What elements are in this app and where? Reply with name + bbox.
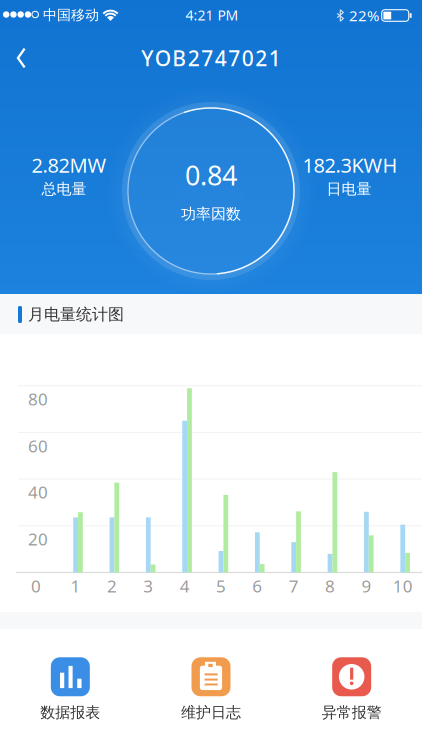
staticText: 4 — [180, 575, 190, 597]
staticText: 功率因数 — [181, 205, 241, 223]
staticText: 4:21 PM — [185, 6, 238, 24]
staticText: 1 — [71, 575, 81, 597]
staticText: 10 — [393, 575, 413, 597]
staticText: 6 — [252, 575, 262, 597]
staticText: 7 — [289, 575, 299, 597]
staticText: 数据报表 — [40, 703, 100, 722]
staticText: 8 — [325, 575, 335, 597]
staticText: 20 — [28, 528, 48, 550]
staticText: 0 — [31, 575, 41, 597]
staticText: YOB2747021 — [141, 44, 281, 72]
button[interactable]: Back — [0, 36, 44, 80]
staticText: 总电量 — [41, 180, 86, 198]
staticText: 80 — [28, 388, 48, 410]
staticText: 2 — [107, 575, 117, 597]
staticText: 异常报警 — [322, 703, 382, 722]
staticText: 中国移动 — [43, 6, 99, 24]
staticText: 月电量统计图 — [28, 305, 124, 324]
button[interactable]: 异常报警 — [281, 629, 422, 750]
staticText: 2.82MW — [31, 152, 106, 178]
staticText: 60 — [28, 435, 48, 457]
button[interactable]: 数据报表 — [0, 629, 141, 750]
button[interactable]: 维护日志 — [141, 629, 281, 750]
staticText: 3 — [143, 575, 153, 597]
staticText: 0.84 — [185, 157, 237, 193]
staticText: 维护日志 — [181, 703, 241, 722]
staticText: 40 — [28, 481, 48, 503]
staticText: 9 — [361, 575, 371, 597]
staticText: 22% — [349, 5, 379, 25]
staticText: 182.3KWH — [302, 152, 397, 178]
staticText: 5 — [216, 575, 226, 597]
staticText: 日电量 — [326, 180, 371, 198]
